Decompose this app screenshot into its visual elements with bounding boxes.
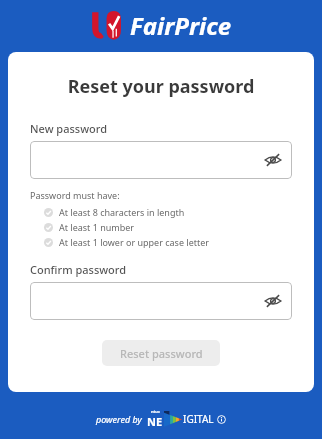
staticText: Password must have: <box>30 189 120 201</box>
staticText: Reset password <box>120 346 203 361</box>
staticText: NE <box>147 414 163 429</box>
button[interactable]: Show password <box>30 141 292 179</box>
staticText: FairPrice <box>130 9 232 42</box>
staticText: IGITAL <box>183 412 214 426</box>
staticText: New password <box>30 121 108 136</box>
staticText: At least 1 lower or upper case letter <box>59 236 210 248</box>
staticText: powered by <box>96 413 142 425</box>
other: FairPrice logo <box>90 9 126 41</box>
button[interactable]: Show password <box>30 282 292 320</box>
button[interactable]: Information <box>217 415 226 424</box>
staticText: Reset your password <box>30 74 292 99</box>
button[interactable]: Reset password <box>102 340 220 366</box>
staticText: At least 1 number <box>59 221 135 233</box>
staticText: Confirm password <box>30 262 127 277</box>
button[interactable]: Show password <box>264 294 282 308</box>
button[interactable]: Show password <box>264 153 282 167</box>
staticText: ntuc <box>151 409 160 414</box>
other: NE Digital <box>164 411 182 428</box>
staticText: At least 8 characters in length <box>59 206 185 218</box>
